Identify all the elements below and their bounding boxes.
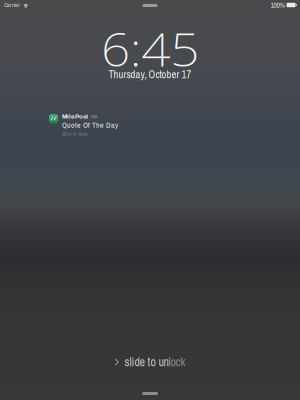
staticText: Quote Of The Day bbox=[62, 120, 118, 130]
button[interactable]: MilePost bbox=[49, 111, 289, 139]
staticText: slide to un bbox=[124, 354, 168, 370]
staticText: Carrier bbox=[4, 1, 20, 9]
staticText: 6:45 bbox=[99, 14, 201, 84]
staticText: 100% bbox=[271, 0, 285, 10]
staticText: MilePost bbox=[62, 113, 88, 120]
staticText: Thursday, October 17 bbox=[108, 67, 191, 81]
staticText: now bbox=[90, 113, 97, 120]
staticText: slide to view bbox=[62, 129, 88, 138]
staticText: lock bbox=[168, 354, 185, 370]
